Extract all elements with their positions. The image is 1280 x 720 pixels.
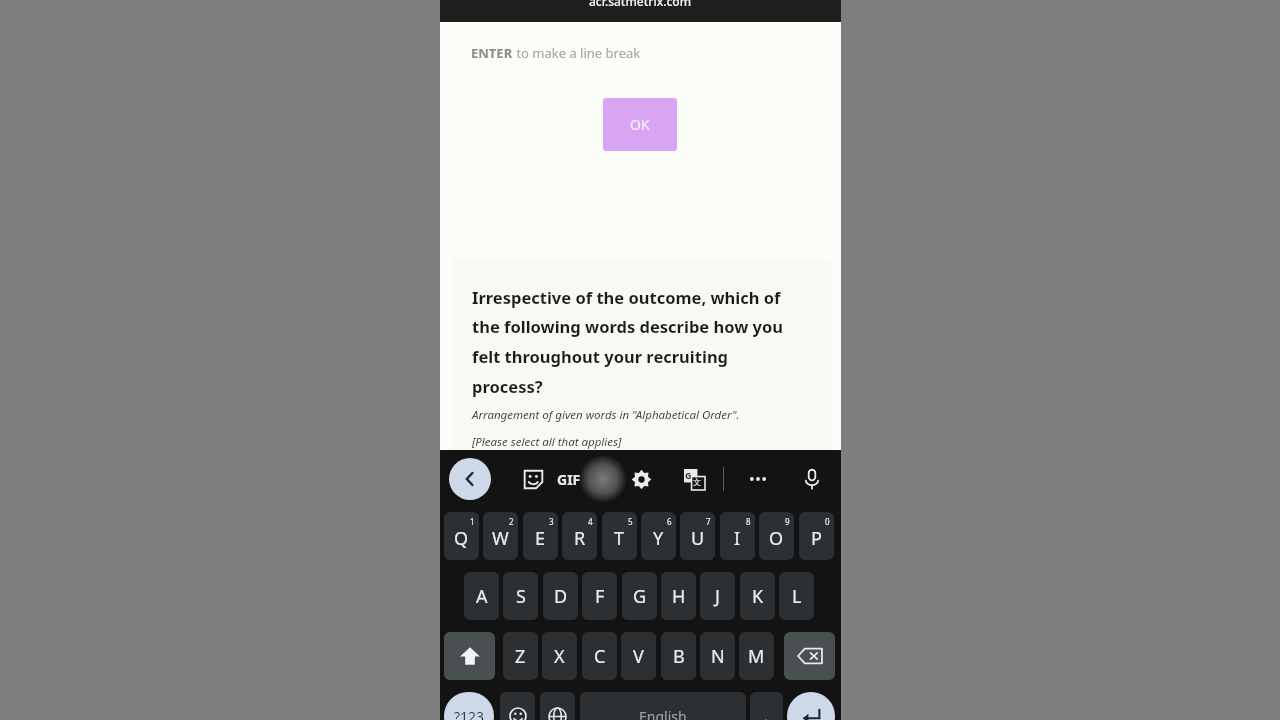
staticText: 2	[509, 516, 514, 527]
staticText: E	[535, 526, 546, 551]
staticText: Irrespective of the outcome, which of th…	[472, 286, 802, 398]
staticText: I	[734, 526, 741, 551]
button[interactable]: Emoji	[500, 692, 535, 720]
staticText: L	[792, 584, 802, 609]
button[interactable]: Stickers	[512, 458, 554, 500]
staticText: 9	[785, 516, 790, 527]
button[interactable]: Backspace	[784, 632, 835, 680]
staticText: X	[554, 644, 565, 669]
button[interactable]: Y	[641, 512, 676, 560]
staticText: D	[554, 584, 568, 609]
button[interactable]: .	[750, 692, 783, 720]
button[interactable]: H	[661, 572, 696, 620]
staticText: 5	[628, 516, 633, 527]
staticText: .	[764, 705, 769, 720]
button[interactable]: OK	[603, 98, 677, 151]
button[interactable]: W	[483, 512, 518, 560]
button[interactable]: GIF	[557, 468, 593, 490]
button[interactable]: Voice input	[791, 458, 833, 500]
staticText: P	[811, 526, 822, 551]
button[interactable]: X	[542, 632, 577, 680]
staticText: Z	[515, 644, 526, 669]
button[interactable]: G	[622, 572, 657, 620]
button[interactable]: Shift	[444, 632, 495, 680]
button[interactable]: U	[680, 512, 715, 560]
staticText: 6	[667, 516, 672, 527]
button[interactable]: C	[582, 632, 617, 680]
staticText: F	[595, 584, 605, 609]
button[interactable]: I	[720, 512, 755, 560]
button[interactable]: E	[523, 512, 558, 560]
staticText: 文	[693, 477, 701, 487]
button[interactable]: Q	[444, 512, 479, 560]
button[interactable]: Change language	[540, 692, 575, 720]
button[interactable]: Enter	[787, 692, 835, 720]
staticText: H	[672, 584, 686, 609]
button[interactable]: Settings	[620, 458, 662, 500]
staticText: Y	[653, 526, 664, 551]
button[interactable]: Z	[503, 632, 538, 680]
button[interactable]: S	[503, 572, 538, 620]
button[interactable]: ?123	[444, 692, 494, 720]
button[interactable]: Irrespective of the outcome, which of th…	[453, 260, 831, 475]
staticText: Q	[454, 526, 469, 551]
staticText: B	[673, 644, 685, 669]
button[interactable]: N	[700, 632, 735, 680]
staticText: R	[574, 526, 586, 551]
button[interactable]: Back	[449, 458, 491, 500]
staticText: U	[691, 526, 705, 551]
button[interactable]: V	[621, 632, 656, 680]
staticText: ENTER	[471, 44, 513, 62]
staticText: 3	[549, 516, 554, 527]
staticText: English	[639, 707, 687, 720]
button[interactable]: F	[582, 572, 617, 620]
staticText: V	[633, 644, 644, 669]
button[interactable]: R	[562, 512, 597, 560]
staticText: S	[516, 584, 526, 609]
staticText: ?123	[454, 707, 485, 720]
button[interactable]: Translate	[673, 458, 715, 500]
staticText: J	[715, 584, 720, 609]
staticText: [Please select all that applies]	[472, 434, 622, 450]
button[interactable]: T	[602, 512, 637, 560]
button[interactable]: K	[740, 572, 775, 620]
staticText: 4	[588, 516, 593, 527]
staticText: W	[492, 526, 509, 551]
button[interactable]: L	[779, 572, 814, 620]
button[interactable]: O	[759, 512, 794, 560]
staticText: 1	[470, 516, 475, 527]
staticText: A	[476, 584, 488, 609]
staticText: M	[748, 644, 765, 669]
staticText: C	[594, 644, 606, 669]
staticText: 8	[746, 516, 751, 527]
staticText: G	[633, 584, 647, 609]
button[interactable]: More options	[737, 458, 779, 500]
staticText: N	[711, 644, 725, 669]
staticText: acr.satmetrix.com	[589, 0, 692, 9]
staticText: Arrangement of given words in "Alphabeti…	[472, 407, 740, 423]
button[interactable]: P	[799, 512, 834, 560]
button[interactable]: A	[464, 572, 499, 620]
button[interactable]: J	[700, 572, 735, 620]
staticText: 0	[825, 516, 830, 527]
button[interactable]: English	[580, 692, 746, 720]
staticText: O	[769, 526, 784, 551]
staticText: G	[685, 469, 692, 481]
button[interactable]: D	[543, 572, 578, 620]
staticText: OK	[630, 115, 650, 134]
staticText: GIF	[557, 470, 581, 489]
button[interactable]: B	[661, 632, 696, 680]
staticText: K	[752, 584, 764, 609]
staticText: to make a line break	[513, 44, 641, 62]
staticText: T	[614, 526, 625, 551]
staticText: 7	[706, 516, 711, 527]
button[interactable]: M	[739, 632, 774, 680]
